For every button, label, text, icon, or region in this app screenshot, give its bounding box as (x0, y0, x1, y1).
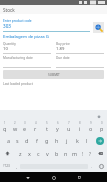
staticText: ?123 (3, 164, 10, 168)
staticText: ? (89, 151, 91, 157)
staticText: 6 (57, 121, 59, 125)
staticText: k (76, 137, 79, 144)
button[interactable]: Enter (92, 134, 107, 147)
staticText: y (56, 125, 59, 132)
staticText: x (28, 150, 31, 157)
button[interactable]: 2 (10, 121, 20, 134)
button[interactable]: ? (86, 147, 93, 160)
staticText: g (45, 137, 49, 144)
staticText: f (36, 137, 38, 144)
staticText: h (55, 137, 59, 144)
staticText: 9 (90, 121, 92, 125)
button[interactable]: s (13, 134, 22, 147)
staticText: 3 (24, 121, 26, 125)
button[interactable]: 0 (96, 121, 107, 134)
staticText: v (46, 150, 49, 157)
button[interactable]: b (52, 147, 61, 160)
staticText: 7 (68, 121, 70, 125)
staticText: 1 (4, 121, 6, 125)
staticText: m (72, 150, 78, 157)
staticText: Enter product code (3, 19, 32, 23)
button[interactable]: z (15, 147, 25, 160)
staticText: 5 (46, 121, 48, 125)
button[interactable]: 8 (74, 121, 85, 134)
staticText: Last loaded product (3, 82, 33, 86)
button[interactable]: d (22, 134, 32, 147)
staticText: e (23, 125, 27, 132)
staticText: . (91, 164, 93, 169)
staticText: Quantity (3, 42, 16, 46)
button[interactable]: 1 (0, 121, 10, 134)
staticText: p (100, 125, 104, 132)
staticText: 0 (101, 121, 103, 125)
staticText: a (7, 137, 11, 144)
button[interactable]: 4 (30, 121, 41, 134)
button[interactable]: x (25, 147, 34, 160)
staticText: 8 (79, 121, 81, 125)
button[interactable]: Shift (0, 147, 15, 160)
button[interactable]: Emoji (96, 160, 107, 172)
button[interactable]: 5 (41, 121, 52, 134)
button[interactable]: Recents (75, 173, 84, 182)
staticText: 10 (3, 46, 8, 52)
staticText: l (86, 137, 88, 144)
staticText: 2 (14, 121, 16, 125)
staticText: Buy price (56, 42, 70, 46)
staticText: b (55, 150, 59, 157)
staticText: SUBMIT (48, 73, 60, 77)
button[interactable]: 9 (85, 121, 96, 134)
button[interactable]: SUBMIT (3, 70, 104, 79)
button[interactable]: 7 (63, 121, 74, 134)
staticText: s (16, 137, 19, 144)
button[interactable]: c (34, 147, 43, 160)
staticText: u (67, 125, 71, 132)
button[interactable]: 6 (52, 121, 63, 134)
button[interactable]: v (43, 147, 52, 160)
button[interactable]: ! (79, 147, 86, 160)
button[interactable]: a (4, 134, 13, 147)
button[interactable]: Search product (93, 22, 104, 33)
button[interactable]: f (32, 134, 42, 147)
button[interactable]: h (52, 134, 62, 147)
staticText: , (16, 164, 18, 169)
staticText: o (89, 125, 93, 132)
staticText: 1.89 (56, 46, 65, 52)
staticText: z (19, 150, 22, 157)
staticText: Stock (3, 7, 15, 13)
button[interactable]: j (62, 134, 72, 147)
button[interactable]: , (13, 160, 20, 172)
staticText: Manufacturing date (3, 56, 33, 60)
button[interactable]: ?123 (0, 160, 13, 172)
staticText: 303 (3, 23, 11, 29)
staticText: r (34, 125, 37, 132)
staticText: Due date (56, 56, 70, 60)
button[interactable]: k (72, 134, 82, 147)
staticText: j (66, 137, 68, 144)
button[interactable]: l (82, 134, 92, 147)
button[interactable]: Home (49, 173, 58, 182)
button[interactable]: Backspace (93, 147, 107, 160)
staticText: i (79, 125, 81, 132)
staticText: d (25, 137, 29, 144)
button[interactable]: m (70, 147, 79, 160)
staticText: q (3, 125, 7, 132)
button[interactable]: g (42, 134, 52, 147)
staticText: ! (82, 151, 84, 157)
button[interactable]: Back (23, 173, 32, 182)
button[interactable]: 3 (20, 121, 30, 134)
staticText: Embalagem de pizza G (3, 33, 49, 39)
staticText: w (13, 125, 18, 132)
staticText: n (64, 150, 68, 157)
button[interactable]: n (61, 147, 70, 160)
staticText: 4 (35, 121, 37, 125)
staticText: c (37, 150, 40, 157)
staticText: t (46, 125, 48, 132)
